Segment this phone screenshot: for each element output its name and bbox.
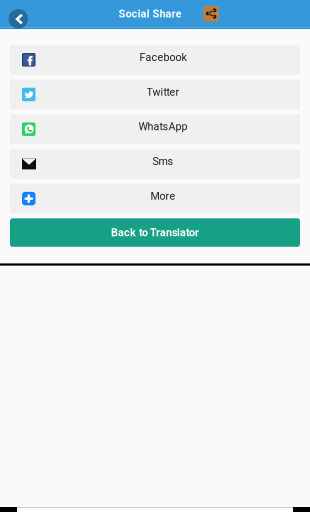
staticText: Twitter [146, 86, 179, 98]
button[interactable]: Share [203, 6, 218, 21]
button[interactable]: Back [9, 9, 28, 29]
staticText: Social Share [118, 7, 181, 20]
button[interactable]: Sms [10, 149, 300, 179]
staticText: More [150, 190, 175, 202]
button[interactable]: WhatsApp [10, 114, 300, 144]
staticText: WhatsApp [138, 120, 187, 133]
button[interactable]: Facebook [10, 45, 300, 75]
button[interactable]: Back to Translator [10, 218, 300, 247]
staticText: Facebook [139, 51, 186, 63]
staticText: Sms [152, 155, 173, 168]
button[interactable]: More [10, 184, 300, 214]
button[interactable]: Twitter [10, 79, 300, 109]
staticText: Back to Translator [111, 226, 199, 239]
